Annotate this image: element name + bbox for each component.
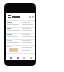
button[interactable]: Profile xyxy=(28,55,33,60)
button[interactable]: Search xyxy=(15,55,20,60)
button[interactable]: Home xyxy=(8,55,13,60)
button[interactable]: Favorites xyxy=(21,55,26,60)
button[interactable]: Menu xyxy=(7,15,11,19)
